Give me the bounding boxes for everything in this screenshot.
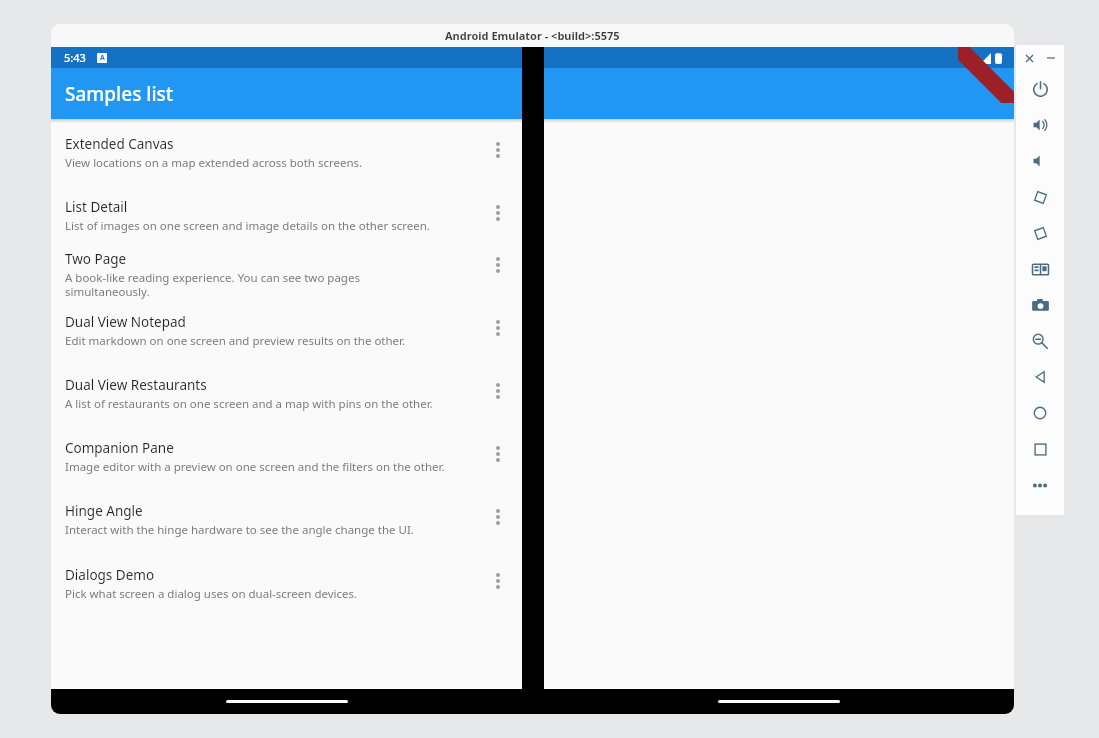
staticText: Dialogs Demo xyxy=(65,566,155,584)
staticText: List Detail xyxy=(65,198,128,216)
button[interactable]: More options xyxy=(474,376,522,428)
button[interactable]: Dual View Notepad xyxy=(51,313,522,365)
button[interactable]: Hinge Angle xyxy=(51,502,522,554)
button[interactable]: Rotate left xyxy=(1016,179,1064,215)
button[interactable]: Companion Pane xyxy=(51,439,522,491)
button[interactable]: Two Page xyxy=(51,250,522,302)
button[interactable]: Minimize xyxy=(1043,50,1059,66)
button[interactable]: Screenshot xyxy=(1016,287,1064,323)
button[interactable]: Dual View Restaurants xyxy=(51,376,522,428)
staticText: A book-like reading experience. You can … xyxy=(65,270,360,300)
button[interactable]: Rotate right xyxy=(1016,215,1064,251)
button[interactable]: List Detail xyxy=(51,198,522,250)
staticText: Android Emulator - <build>:5575 xyxy=(445,28,620,43)
button[interactable]: More options xyxy=(474,502,522,554)
staticText: Pick what screen a dialog uses on dual-s… xyxy=(65,586,358,602)
button[interactable]: Dialogs Demo xyxy=(51,566,522,618)
button[interactable]: Home xyxy=(1016,395,1064,431)
staticText: Interact with the hinge hardware to see … xyxy=(65,522,414,538)
staticText: Edit markdown on one screen and preview … xyxy=(65,333,406,349)
staticText: Dual View Notepad xyxy=(65,313,186,331)
button[interactable]: More options xyxy=(474,250,522,302)
staticText: 5:43 xyxy=(64,50,86,65)
staticText: Two Page xyxy=(65,250,127,268)
staticText: Companion Pane xyxy=(65,439,174,457)
button[interactable]: Power xyxy=(1016,71,1064,107)
button[interactable]: Volume down xyxy=(1016,143,1064,179)
staticText: Samples list xyxy=(65,81,174,107)
button[interactable]: Close xyxy=(1021,50,1037,66)
button[interactable]: More options xyxy=(474,198,522,250)
staticText: Dual View Restaurants xyxy=(65,376,207,394)
staticText: List of images on one screen and image d… xyxy=(65,218,430,234)
staticText: A xyxy=(100,53,105,63)
button[interactable]: Volume up xyxy=(1016,107,1064,143)
button[interactable]: Fold xyxy=(1016,251,1064,287)
staticText: Image editor with a preview on one scree… xyxy=(65,459,445,475)
button[interactable]: Extended Canvas xyxy=(51,135,522,187)
button[interactable]: More options xyxy=(474,566,522,618)
button[interactable]: Back xyxy=(1016,359,1064,395)
button[interactable]: Overview xyxy=(1016,431,1064,467)
button[interactable]: Zoom xyxy=(1016,323,1064,359)
button[interactable]: More options xyxy=(474,439,522,491)
staticText: Hinge Angle xyxy=(65,502,143,520)
button[interactable]: More options xyxy=(474,313,522,365)
button[interactable]: More options xyxy=(474,135,522,187)
staticText: View locations on a map extended across … xyxy=(65,155,363,171)
staticText: A list of restaurants on one screen and … xyxy=(65,396,433,412)
staticText: Extended Canvas xyxy=(65,135,174,153)
button[interactable]: More xyxy=(1016,467,1064,503)
